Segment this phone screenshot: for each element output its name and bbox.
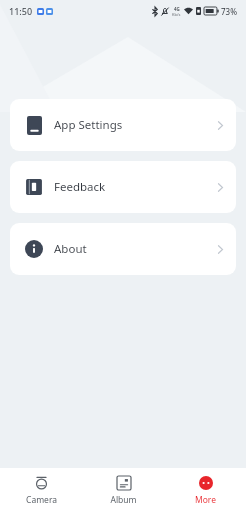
- staticText: More: [195, 494, 216, 506]
- staticText: About: [54, 241, 87, 257]
- staticText: App Settings: [54, 117, 123, 133]
- button[interactable]: Feedback: [10, 161, 236, 213]
- staticText: Album: [110, 494, 137, 506]
- staticText: 11:50: [9, 5, 33, 17]
- button[interactable]: More: [164, 468, 246, 512]
- staticText: Camera: [26, 494, 57, 506]
- button[interactable]: App Settings: [10, 99, 236, 151]
- button[interactable]: About: [10, 223, 236, 275]
- staticText: 4G: [174, 6, 180, 12]
- staticText: 73%: [221, 6, 237, 17]
- button[interactable]: Camera: [0, 468, 82, 512]
- staticText: Kb/s: [172, 12, 181, 17]
- staticText: Feedback: [54, 179, 106, 195]
- button[interactable]: Album: [82, 468, 164, 512]
